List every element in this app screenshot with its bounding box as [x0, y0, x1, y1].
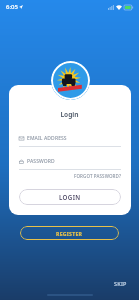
staticText: PASSWORD: [27, 158, 55, 165]
button[interactable]: FORGOT PASSWORD?: [60, 172, 121, 180]
staticText: Login: [0, 110, 139, 119]
staticText: REGISTER: [56, 230, 83, 237]
button[interactable]: SKIP: [112, 276, 129, 290]
staticText: 6:05: [6, 3, 18, 11]
staticText: EMAIL ADDRESS: [27, 135, 67, 142]
button[interactable]: REGISTER: [20, 226, 119, 240]
button[interactable]: PASSWORD: [19, 157, 121, 166]
button[interactable]: EMAIL ADDRESS: [19, 134, 121, 143]
staticText: SKIP: [114, 280, 127, 287]
staticText: FORGOT PASSWORD?: [74, 173, 121, 179]
staticText: LOGIN: [59, 193, 81, 201]
button[interactable]: LOGIN: [19, 189, 121, 205]
